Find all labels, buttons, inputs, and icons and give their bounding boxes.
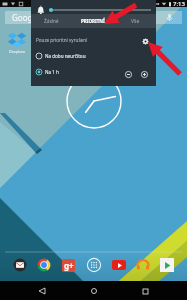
staticText: Vše <box>131 18 140 25</box>
button[interactable]: Recent apps <box>136 282 154 300</box>
staticText: Pouze prioritní vyrušení <box>36 37 88 43</box>
button[interactable]: Decrease <box>124 70 133 79</box>
button[interactable]: Google Plus <box>59 256 77 274</box>
button[interactable]: Play Music <box>134 256 152 274</box>
button[interactable]: Dropbox <box>6 29 28 51</box>
button[interactable]: Play Store <box>158 256 176 274</box>
button[interactable]: Žádné <box>31 18 72 25</box>
button[interactable]: Na 1 h <box>34 66 159 78</box>
button[interactable]: Apps <box>85 256 103 274</box>
button[interactable]: Settings <box>139 35 152 48</box>
button[interactable]: Google search <box>5 11 182 24</box>
button[interactable]: Gmail <box>11 256 29 274</box>
button[interactable]: Back <box>33 282 51 300</box>
button[interactable]: Increase <box>140 70 149 79</box>
staticText: Na dobu neurčitou <box>45 53 86 59</box>
button[interactable]: Home <box>85 282 103 300</box>
button[interactable]: PRIORITNÍ <box>72 18 114 24</box>
staticText: g+ <box>64 260 74 271</box>
staticText: 7:13 <box>173 0 185 7</box>
staticText: Dropbox <box>3 49 31 54</box>
staticText: Žádné <box>44 18 59 25</box>
button[interactable]: Vše <box>114 18 156 25</box>
staticText: Na 1 h <box>45 69 59 75</box>
button[interactable]: Chrome <box>35 256 53 274</box>
staticText: PRIORITNÍ <box>81 18 105 24</box>
staticText: Google <box>12 12 39 23</box>
button[interactable]: Na dobu neurčitou <box>34 50 159 62</box>
button[interactable]: YouTube <box>110 256 128 274</box>
